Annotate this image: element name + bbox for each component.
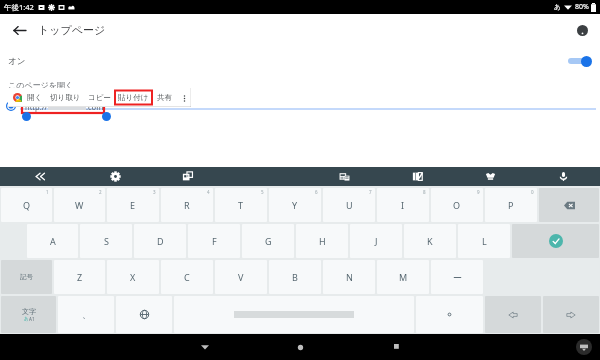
button[interactable]: globe (116, 296, 172, 333)
button[interactable]: Q (1, 188, 52, 222)
staticText: Q (23, 199, 31, 211)
button[interactable]: ー (431, 260, 483, 294)
staticText: 、 (82, 309, 91, 320)
button[interactable]: right (543, 296, 599, 333)
staticText: 9 (477, 189, 480, 195)
button[interactable]: Hide keyboard (576, 339, 592, 355)
button[interactable]: left (485, 296, 541, 333)
button[interactable]: clip (151, 167, 224, 186)
button[interactable]: 共有 (157, 93, 172, 102)
button[interactable]: X (107, 260, 159, 294)
button[interactable]: space (174, 296, 414, 333)
staticText: ー (453, 272, 462, 283)
button[interactable]: C (161, 260, 213, 294)
staticText: H (319, 235, 326, 247)
staticText: 0 (531, 189, 534, 195)
button[interactable]: オン (0, 50, 600, 72)
staticText: M (399, 271, 408, 283)
button[interactable]: Back (8, 19, 30, 41)
button[interactable]: J (350, 224, 402, 258)
button[interactable]: T (215, 188, 267, 222)
button[interactable]: U (323, 188, 375, 222)
button[interactable]: コピー (88, 93, 111, 102)
button[interactable]: Recents (387, 337, 407, 357)
button[interactable]: chevrons (0, 167, 79, 186)
staticText: A (50, 235, 56, 247)
staticText: 1 (46, 189, 49, 195)
button[interactable]: moji (1, 296, 56, 333)
button[interactable]: H (296, 224, 348, 258)
button[interactable]: G (242, 224, 294, 258)
button[interactable]: R (161, 188, 213, 222)
staticText: Y (292, 199, 298, 211)
staticText: J (375, 235, 378, 247)
button[interactable]: gear (79, 167, 151, 186)
button[interactable]: P (485, 188, 537, 222)
button[interactable]: Y (269, 188, 321, 222)
button[interactable]: Back (195, 337, 215, 357)
button[interactable]: bksp (539, 188, 599, 222)
staticText: V (238, 271, 244, 283)
button[interactable]: F (188, 224, 240, 258)
staticText: S (104, 235, 109, 247)
staticText: 2 (99, 189, 102, 195)
button[interactable]: 貼り付け (116, 92, 151, 103)
button[interactable]: B (269, 260, 321, 294)
button[interactable]: M (377, 260, 429, 294)
button[interactable]: 記号 (1, 260, 52, 294)
staticText: 記号 (20, 273, 33, 281)
staticText: http:// (25, 102, 48, 112)
button[interactable]: O (431, 188, 483, 222)
button[interactable]: Help (572, 20, 592, 40)
staticText: このページを開く (8, 80, 74, 90)
button[interactable]: W (54, 188, 105, 222)
button[interactable]: V (215, 260, 267, 294)
staticText: 午後1:42 (4, 2, 34, 12)
staticText: O (453, 199, 461, 211)
button[interactable]: K (404, 224, 456, 258)
button[interactable]: L (458, 224, 510, 258)
button[interactable]: calc (308, 167, 381, 186)
button[interactable]: More options (179, 93, 189, 103)
staticText: T (238, 199, 244, 211)
staticText: P (508, 199, 514, 211)
staticText: X (130, 271, 136, 283)
button[interactable]: enter (512, 224, 599, 258)
staticText: B (292, 271, 298, 283)
staticText: .com (86, 102, 104, 112)
staticText: あ (24, 316, 29, 322)
staticText: オン (8, 56, 26, 67)
staticText: A1 (29, 316, 35, 322)
button[interactable]: 切り取り (50, 93, 81, 102)
staticText: トップページ (38, 23, 106, 37)
button[interactable]: emoji (454, 167, 527, 186)
button[interactable]: dot (416, 296, 483, 333)
button[interactable]: A (27, 224, 78, 258)
staticText: C (184, 271, 190, 283)
staticText: 80% (575, 2, 589, 12)
staticText: L (482, 235, 487, 247)
button[interactable]: Home (290, 337, 310, 357)
staticText: 貼り付け (118, 93, 149, 102)
button[interactable]: S (80, 224, 132, 258)
staticText: E (130, 199, 136, 211)
staticText: 7 (369, 189, 372, 195)
staticText: G (265, 235, 272, 247)
staticText: N (346, 271, 353, 283)
button[interactable]: E (107, 188, 159, 222)
staticText: 6 (315, 189, 318, 195)
staticText: 4 (207, 189, 210, 195)
staticText: Z (77, 271, 83, 283)
staticText: 文字 (22, 307, 36, 316)
button[interactable]: 開く (27, 93, 43, 102)
button[interactable]: D (134, 224, 186, 258)
button[interactable]: note (381, 167, 454, 186)
button[interactable]: mic (527, 167, 600, 186)
staticText: K (427, 235, 433, 247)
staticText: 5 (261, 189, 264, 195)
staticText: R (184, 199, 190, 211)
button[interactable]: Z (54, 260, 105, 294)
button[interactable]: N (323, 260, 375, 294)
button[interactable]: I (377, 188, 429, 222)
